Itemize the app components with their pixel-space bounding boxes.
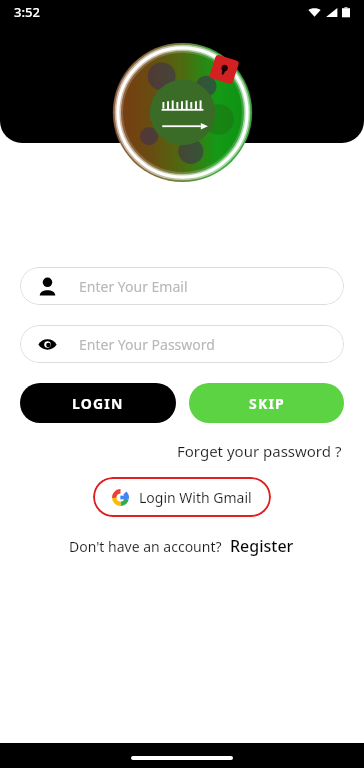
button[interactable]: LOGIN [20,383,176,423]
staticText: Don't have an account? [69,537,222,556]
staticText: LOGIN [72,394,124,413]
button[interactable]: SKIP [189,383,344,423]
staticText: 3:52 [14,3,40,21]
button[interactable]: Google [93,477,271,517]
other: Account [38,277,57,296]
staticText: Login With Gmail [139,488,252,507]
staticText: Enter Your Email [79,277,188,296]
button[interactable]: Forget your password ? [175,439,344,463]
other: Show password [38,335,57,354]
button[interactable]: Account [20,267,344,305]
button[interactable]: Show password [20,325,344,363]
button[interactable]: Register [228,533,296,559]
staticText: SKIP [249,394,285,413]
other: Google [112,489,129,506]
staticText: Enter Your Password [79,335,215,354]
